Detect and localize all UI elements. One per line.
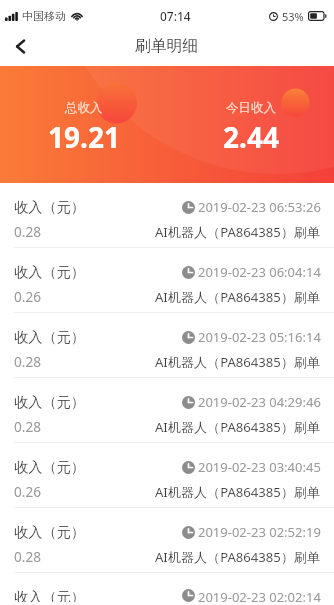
staticText: AI机器人（PA864385）刷单 [155, 483, 321, 501]
staticText: 0.26 [14, 482, 41, 501]
staticText: 0.28 [14, 222, 41, 241]
staticText: 收入（元） [14, 588, 85, 602]
staticText: AI机器人（PA864385）刷单 [155, 418, 321, 436]
staticText: 今日收入 [226, 100, 276, 116]
staticText: 0.28 [14, 547, 41, 566]
button[interactable]: 收入（元） [0, 573, 334, 602]
staticText: 07:14 [160, 8, 191, 24]
staticText: 2019-02-23 06:53:26 [198, 198, 321, 216]
staticText: AI机器人（PA864385）刷单 [155, 353, 321, 371]
button[interactable]: 收入（元） [0, 508, 334, 573]
staticText: 0.28 [14, 417, 41, 436]
staticText: 2019-02-23 05:16:14 [198, 328, 321, 346]
staticText: 收入（元） [14, 328, 85, 346]
button[interactable]: 收入（元） [0, 378, 334, 443]
staticText: 总收入 [65, 100, 103, 116]
staticText: 0.28 [14, 352, 41, 371]
staticText: 中国移动 [22, 9, 66, 23]
staticText: 收入（元） [14, 458, 85, 476]
staticText: 53% [282, 9, 304, 24]
staticText: 19.21 [48, 118, 120, 156]
button[interactable]: 收入（元） [0, 313, 334, 378]
staticText: 收入（元） [14, 523, 85, 541]
staticText: 收入（元） [14, 198, 85, 216]
staticText: 2019-02-23 02:02:14 [198, 588, 321, 602]
button[interactable]: 收入（元） [0, 183, 334, 248]
button[interactable]: Back [0, 28, 42, 66]
staticText: 刷单明细 [135, 36, 199, 56]
staticText: 收入（元） [14, 263, 85, 281]
staticText: AI机器人（PA864385）刷单 [155, 288, 321, 306]
staticText: AI机器人（PA864385）刷单 [155, 223, 321, 241]
staticText: 2019-02-23 06:04:14 [198, 263, 321, 281]
staticText: 0.26 [14, 287, 41, 306]
staticText: 2019-02-23 03:40:45 [198, 458, 321, 476]
staticText: 2019-02-23 02:52:19 [198, 523, 321, 541]
staticText: 2.44 [223, 118, 279, 156]
button[interactable]: 收入（元） [0, 443, 334, 508]
staticText: 收入（元） [14, 393, 85, 411]
button[interactable]: 收入（元） [0, 248, 334, 313]
staticText: 2019-02-23 04:29:46 [198, 393, 321, 411]
staticText: AI机器人（PA864385）刷单 [155, 548, 321, 566]
